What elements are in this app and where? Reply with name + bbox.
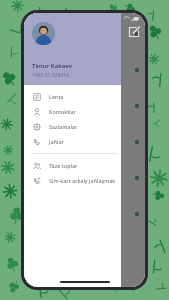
staticText: Sim-kart arkaly jaňlaşmak bbox=[49, 177, 116, 184]
staticText: Lenta bbox=[49, 93, 64, 100]
button[interactable]: Compose bbox=[128, 26, 140, 38]
button[interactable]: Sim-kart arkaly jaňlaşmak bbox=[24, 173, 121, 188]
button[interactable]: Jaňlar bbox=[24, 134, 121, 149]
staticText: Täze toplar bbox=[49, 162, 78, 169]
staticText: Jaňlar bbox=[49, 138, 64, 145]
staticText: Sazlamalar bbox=[49, 123, 78, 130]
staticText: +993 61 529914 bbox=[32, 72, 69, 79]
staticText: Kontaktlar bbox=[49, 108, 76, 115]
button[interactable]: Täze toplar bbox=[24, 158, 121, 173]
button[interactable]: Profile photo bbox=[32, 22, 55, 45]
button[interactable]: Sazlamalar bbox=[24, 119, 121, 134]
button[interactable]: Kontaktlar bbox=[24, 104, 121, 119]
staticText: Timur Kakaev bbox=[32, 62, 72, 70]
button[interactable]: Lenta bbox=[24, 89, 121, 104]
